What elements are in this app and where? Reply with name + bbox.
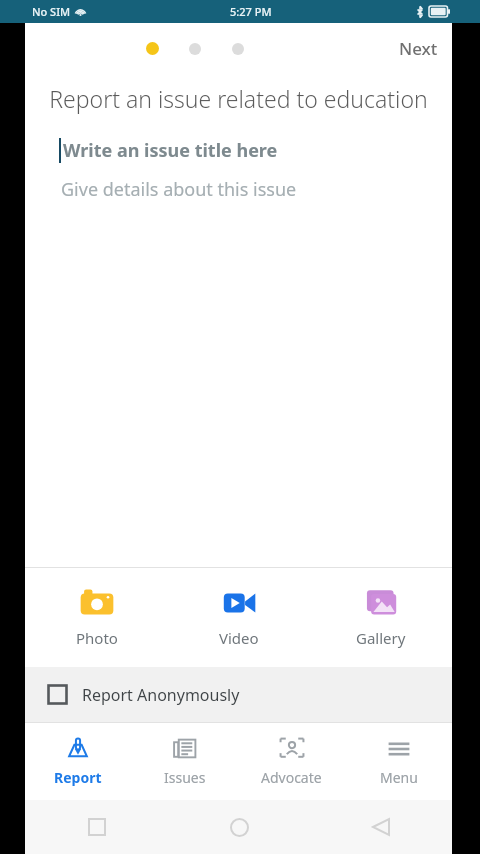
button[interactable]: Issues bbox=[131, 723, 238, 800]
button[interactable]: Home bbox=[168, 800, 310, 854]
staticText: Photo bbox=[76, 628, 118, 648]
button[interactable]: Video bbox=[168, 568, 310, 667]
button[interactable]: Menu bbox=[345, 723, 452, 800]
staticText: Gallery bbox=[356, 628, 406, 648]
staticText: No SIM bbox=[32, 4, 71, 19]
staticText: Next bbox=[399, 37, 438, 60]
button[interactable]: Give details about this issue bbox=[25, 177, 452, 202]
button[interactable]: Report bbox=[25, 723, 131, 800]
staticText: Menu bbox=[380, 768, 418, 787]
staticText: Issues bbox=[164, 768, 206, 787]
button[interactable]: Page indicator bbox=[232, 43, 244, 55]
staticText: Write an issue title here bbox=[63, 138, 278, 163]
button[interactable]: Recents bbox=[25, 800, 168, 854]
staticText: Report an issue related to education bbox=[49, 83, 428, 114]
button[interactable]: Back bbox=[310, 800, 452, 854]
staticText: Report Anonymously bbox=[82, 684, 240, 706]
staticText: Give details about this issue bbox=[61, 177, 297, 202]
button[interactable]: Report Anonymously bbox=[25, 667, 452, 722]
button[interactable]: Gallery bbox=[310, 568, 452, 667]
button[interactable]: Advocate bbox=[238, 723, 345, 800]
staticText: Video bbox=[219, 628, 259, 648]
staticText: Advocate bbox=[261, 768, 322, 787]
button[interactable]: Next bbox=[385, 29, 452, 68]
button[interactable]: Page indicator bbox=[189, 43, 201, 55]
button[interactable]: Page indicator bbox=[146, 42, 159, 55]
staticText: 5:27 PM bbox=[230, 4, 272, 19]
staticText: Report bbox=[54, 768, 102, 787]
button[interactable]: Photo bbox=[25, 568, 168, 667]
button[interactable]: Write an issue title here bbox=[25, 136, 452, 165]
